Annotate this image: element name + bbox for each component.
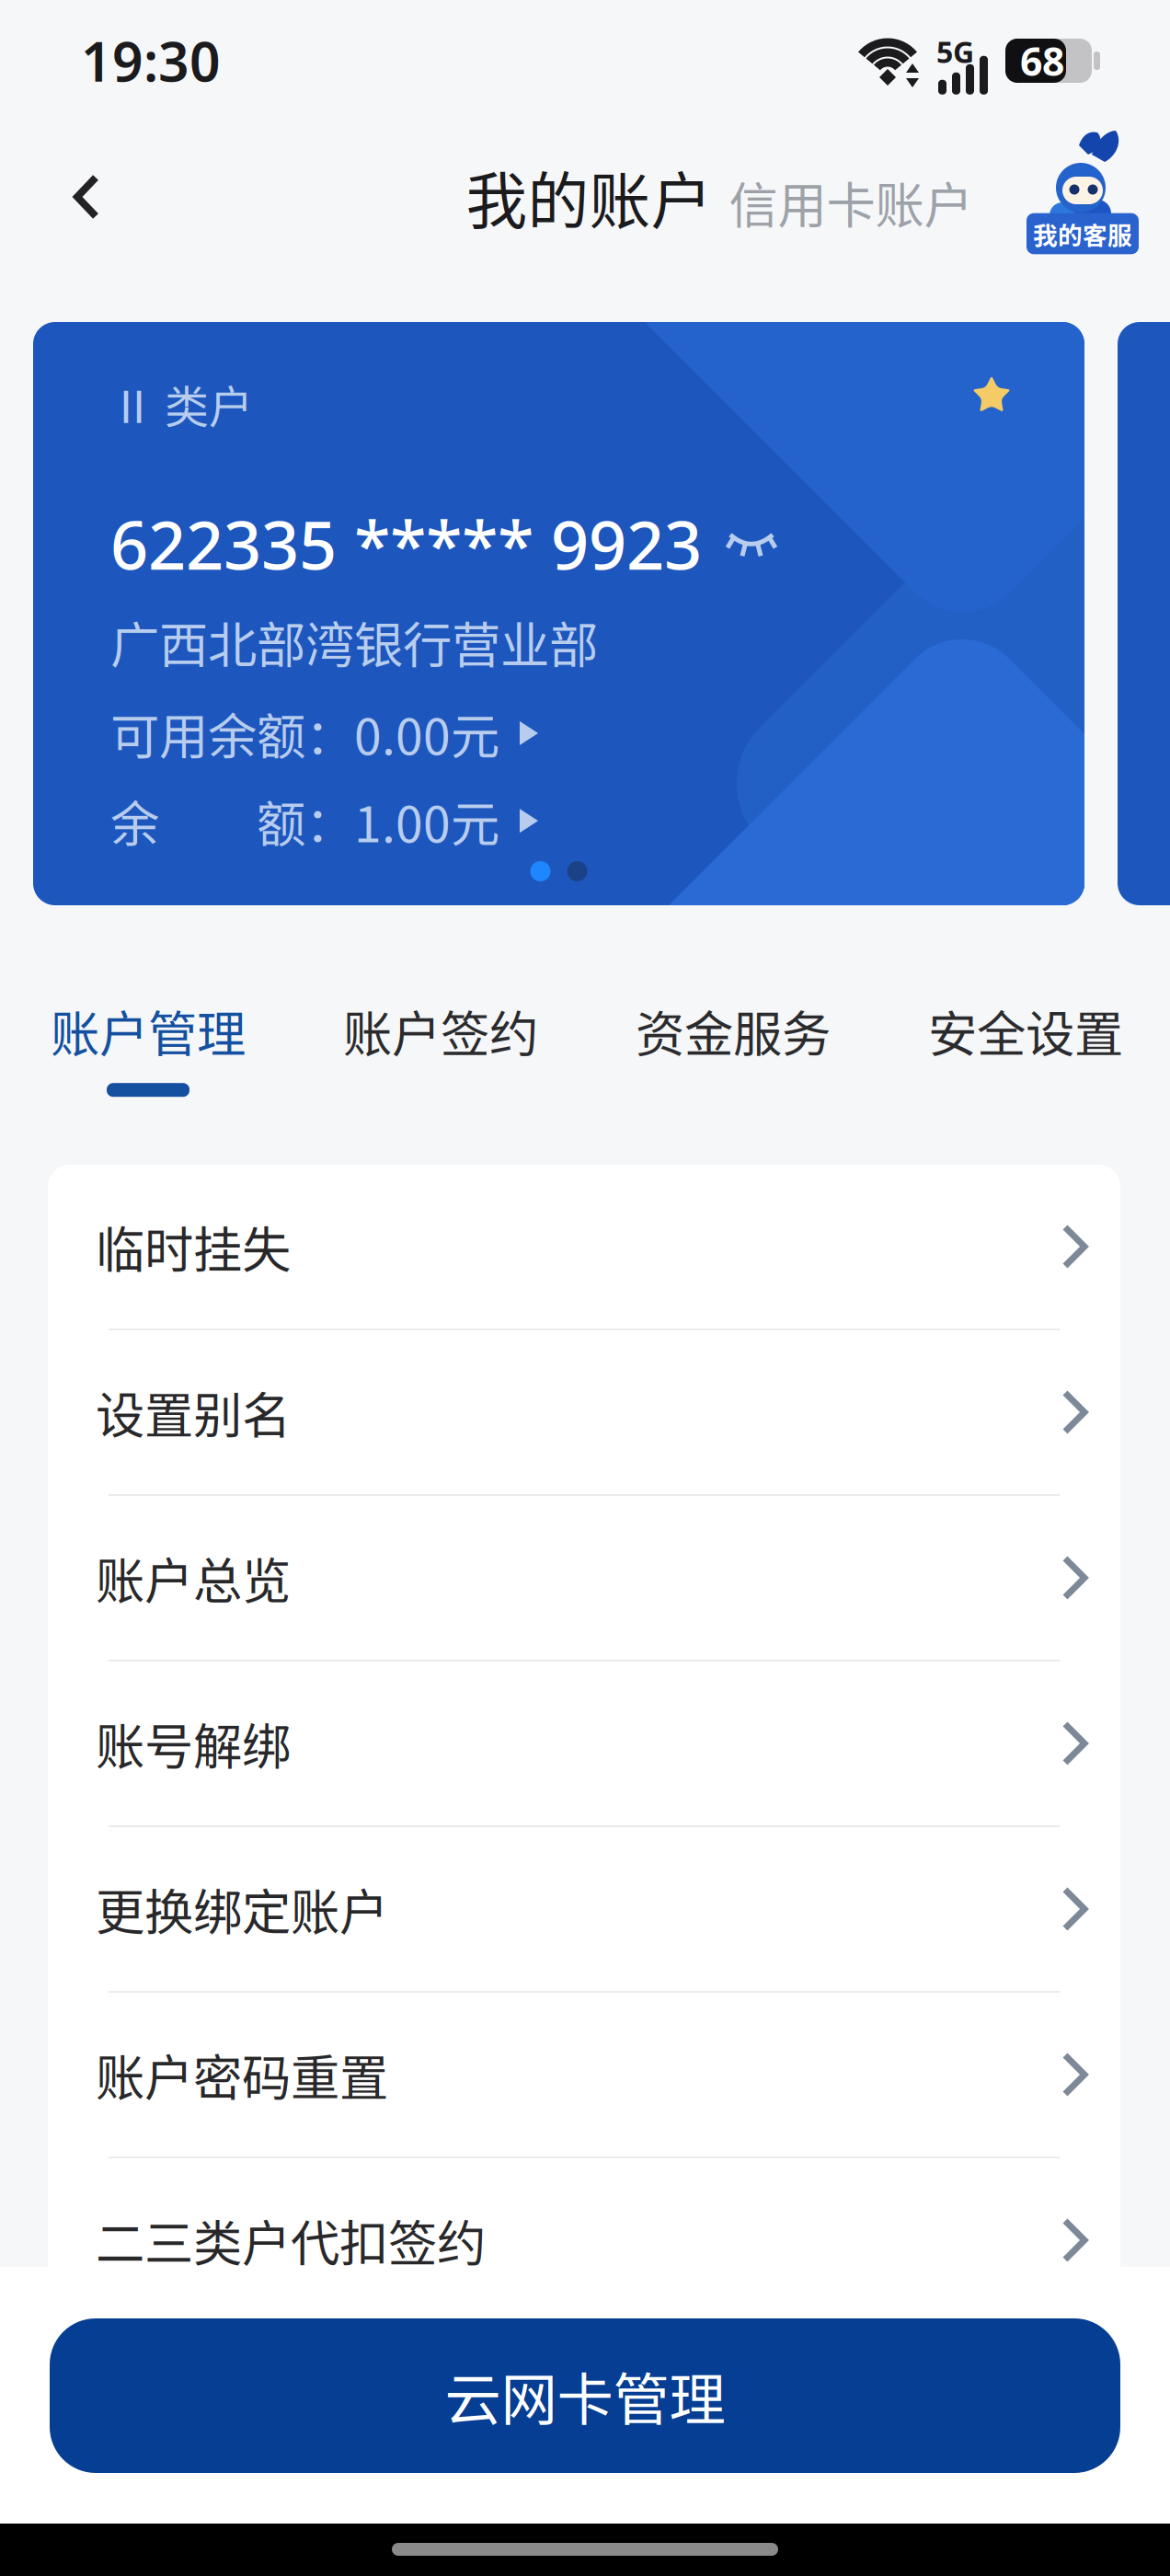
staticText: 5G [936,32,974,71]
staticText: 账户签约 [343,995,538,1066]
staticText: 临时挂失 [96,1211,291,1282]
staticText: 更换绑定账户 [96,1873,388,1945]
staticText: 云网卡管理 [445,2355,725,2437]
staticText: 资金服务 [636,995,831,1066]
button[interactable]: 可用余额：0.00元 [110,698,1037,769]
staticText: 可用余额：0.00元 [110,698,499,769]
staticText: 我的客服 [1033,216,1132,251]
staticText: 信用卡账户 [729,167,973,238]
staticText: 我的账户 [466,152,712,241]
staticText: 广西北部湾银行营业部 [110,606,598,677]
button[interactable]: 账户总览 [48,1496,1120,1660]
staticText: 安全设置 [928,995,1123,1066]
button[interactable]: 更换绑定账户 [48,1827,1120,1991]
staticText: 二三类户代扣签约 [96,2205,486,2276]
button[interactable]: 账户管理 [2,953,294,1165]
button[interactable]: 账户密码重置 [48,1993,1120,2156]
staticText: 余 额：1.00元 [110,785,499,856]
staticText: 账户管理 [51,995,246,1066]
button[interactable]: 资金服务 [587,953,879,1165]
button[interactable]: 设置别名 [48,1330,1120,1494]
staticText: Ⅱ 类户 [110,372,253,436]
button[interactable]: 二三类户代扣签约 [48,2158,1120,2322]
staticText: 68 [1020,35,1064,87]
button[interactable]: 余 额：1.00元 [110,785,1037,856]
staticText: 622335 ***** 9923 [110,500,702,588]
staticText: 账户总览 [96,1542,291,1613]
staticText: 设置别名 [96,1377,291,1448]
button[interactable]: Customer service [1021,136,1144,258]
button[interactable]: 临时挂失 [48,1165,1120,1328]
button[interactable]: 云网卡管理 [50,2318,1120,2473]
button[interactable]: 账户签约 [294,953,587,1165]
button[interactable]: 账号解绑 [48,1662,1120,1825]
button[interactable]: Back [44,151,129,243]
button[interactable]: 安全设置 [879,953,1170,1165]
button[interactable]: 信用卡账户 [729,167,973,241]
staticText: 账号解绑 [96,1708,291,1779]
staticText: 账户密码重置 [96,2039,388,2110]
staticText: 19:30 [81,25,221,97]
